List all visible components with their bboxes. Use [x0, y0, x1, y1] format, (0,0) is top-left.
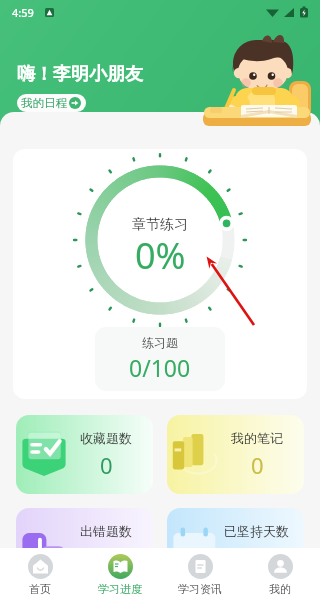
- staticText: 首页: [29, 582, 51, 596]
- button[interactable]: 我的笔记: [167, 415, 304, 494]
- staticText: 4:59: [12, 5, 34, 20]
- button[interactable]: 首页: [0, 548, 80, 600]
- button[interactable]: 已坚持天数: [167, 508, 304, 587]
- button[interactable]: 我的日程: [17, 94, 86, 112]
- staticText: 我的笔记: [231, 430, 283, 446]
- staticText: 学习进度: [98, 582, 142, 596]
- staticText: 0: [250, 543, 263, 573]
- staticText: 0/100: [129, 352, 191, 383]
- staticText: 练习题: [142, 335, 178, 350]
- button[interactable]: 我的: [240, 548, 320, 600]
- staticText: 0: [100, 543, 113, 573]
- staticText: 0: [100, 450, 113, 480]
- button[interactable]: 练习题: [95, 327, 225, 391]
- button[interactable]: 收藏题数: [16, 415, 153, 494]
- button[interactable]: 学习进度: [80, 548, 160, 600]
- staticText: 学习资讯: [178, 582, 222, 596]
- staticText: 收藏题数: [80, 430, 132, 446]
- button[interactable]: 学习资讯: [160, 548, 240, 600]
- staticText: 嗨！李明小朋友: [17, 63, 143, 86]
- staticText: 0: [251, 450, 264, 480]
- staticText: 出错题数: [80, 523, 132, 539]
- staticText: 已坚持天数: [224, 523, 289, 539]
- staticText: 0%: [135, 231, 186, 280]
- staticText: 我的: [269, 582, 291, 596]
- staticText: 我的日程: [21, 96, 67, 110]
- button[interactable]: 出错题数: [16, 508, 153, 587]
- staticText: 章节练习: [132, 216, 188, 234]
